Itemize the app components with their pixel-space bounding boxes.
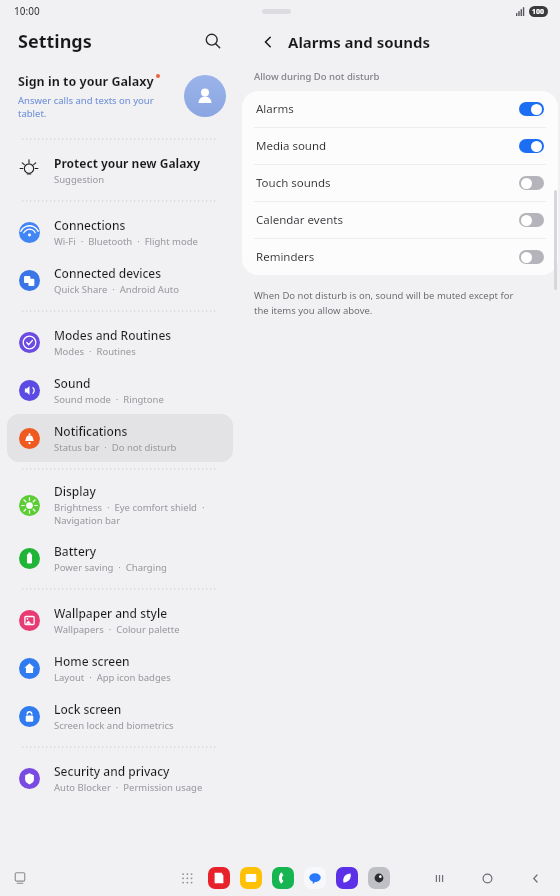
- button[interactable]: Lock screen: [7, 692, 233, 740]
- staticText: Connections: [54, 217, 126, 233]
- staticText: Wallpaper and style: [54, 605, 168, 621]
- button[interactable]: App: [304, 867, 326, 889]
- button[interactable]: Notifications: [7, 414, 233, 462]
- staticText: Settings: [18, 29, 92, 54]
- button[interactable]: Protect your new Galaxy: [7, 146, 233, 194]
- button[interactable]: App: [368, 867, 390, 889]
- staticText: Media sound: [256, 138, 519, 154]
- button[interactable]: App: [336, 867, 358, 889]
- staticText: Answer calls and texts on your tablet.: [18, 94, 154, 120]
- staticText: Display: [54, 483, 96, 499]
- staticText: Protect your new Galaxy: [54, 155, 201, 171]
- staticText: Reminders: [256, 249, 519, 265]
- staticText: Sign in to your Galaxy: [18, 73, 154, 90]
- staticText: Wallpapers · Colour palette: [54, 623, 180, 636]
- staticText: When Do not disturb is on, sound will be…: [254, 289, 514, 317]
- staticText: Layout · App icon badges: [54, 671, 171, 684]
- staticText: Alarms and sounds: [288, 32, 431, 52]
- button[interactable]: Calendar events: [242, 202, 558, 238]
- button[interactable]: Media sound: [242, 128, 558, 164]
- button[interactable]: App: [272, 867, 294, 889]
- staticText: Modes and Routines: [54, 327, 172, 343]
- staticText: Modes · Routines: [54, 345, 136, 358]
- button[interactable]: All apps: [176, 867, 198, 889]
- staticText: Screen lock and biometrics: [54, 719, 174, 732]
- staticText: Wi-Fi · Bluetooth · Flight mode: [54, 235, 198, 248]
- staticText: 10:00: [14, 4, 40, 18]
- button[interactable]: Recent apps: [8, 866, 32, 890]
- staticText: Quick Share · Android Auto: [54, 283, 179, 296]
- button[interactable]: Home screen: [7, 644, 233, 692]
- staticText: Touch sounds: [256, 175, 519, 191]
- staticText: Allow during Do not disturb: [254, 70, 380, 83]
- button[interactable]: App: [208, 867, 230, 889]
- button[interactable]: Display: [7, 476, 233, 534]
- button[interactable]: Sign in to your Galaxy: [0, 60, 240, 132]
- button[interactable]: Reminders: [242, 239, 558, 275]
- button[interactable]: Security and privacy: [7, 754, 233, 802]
- staticText: Alarms: [256, 101, 519, 117]
- button[interactable]: Back: [254, 28, 282, 56]
- button[interactable]: Modes and Routines: [7, 318, 233, 366]
- staticText: Brightness · Eye comfort shield · Naviga…: [54, 501, 205, 527]
- button[interactable]: Touch sounds: [242, 165, 558, 201]
- staticText: Notifications: [54, 423, 128, 439]
- staticText: Lock screen: [54, 701, 122, 717]
- staticText: Sound: [54, 375, 91, 391]
- staticText: Suggestion: [54, 173, 105, 186]
- staticText: Status bar · Do not disturb: [54, 441, 177, 454]
- staticText: Security and privacy: [54, 763, 170, 779]
- button[interactable]: Back: [524, 867, 546, 889]
- button[interactable]: Home: [476, 867, 498, 889]
- staticText: 100: [532, 7, 545, 17]
- button[interactable]: Alarms: [242, 91, 558, 127]
- staticText: Auto Blocker · Permission usage: [54, 781, 203, 794]
- staticText: Calendar events: [256, 212, 519, 228]
- staticText: Battery: [54, 543, 97, 559]
- button[interactable]: Recents: [428, 867, 450, 889]
- button[interactable]: Search: [198, 26, 228, 56]
- button[interactable]: Battery: [7, 534, 233, 582]
- staticText: Home screen: [54, 653, 130, 669]
- button[interactable]: Sound: [7, 366, 233, 414]
- staticText: Power saving · Charging: [54, 561, 167, 574]
- staticText: Sound mode · Ringtone: [54, 393, 164, 406]
- button[interactable]: Connected devices: [7, 256, 233, 304]
- button[interactable]: Wallpaper and style: [7, 596, 233, 644]
- button[interactable]: Connections: [7, 208, 233, 256]
- staticText: Connected devices: [54, 265, 162, 281]
- button[interactable]: App: [240, 867, 262, 889]
